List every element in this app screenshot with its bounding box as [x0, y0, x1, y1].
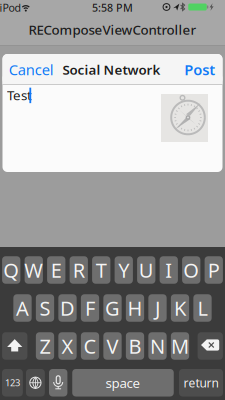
staticText: L: [197, 295, 207, 321]
staticText: O: [183, 257, 199, 283]
button[interactable]: Cancel: [9, 60, 54, 79]
button[interactable]: C: [81, 332, 99, 360]
staticText: K: [174, 295, 186, 321]
staticText: Z: [39, 333, 50, 359]
staticText: 123: [5, 377, 20, 389]
button[interactable]: Z: [36, 332, 54, 360]
staticText: Test: [7, 86, 32, 104]
staticText: REComposeViewController: [28, 21, 196, 38]
staticText: N: [150, 333, 165, 359]
staticText: F: [85, 295, 95, 321]
staticText: C: [83, 333, 96, 359]
button[interactable]: O: [182, 256, 200, 284]
button[interactable]: R: [70, 256, 88, 284]
staticText: Q: [3, 257, 19, 283]
button[interactable]: L: [193, 294, 212, 322]
staticText: P: [208, 257, 220, 283]
button[interactable]: B: [126, 332, 144, 360]
button[interactable]: Dictate: [49, 369, 67, 396]
staticText: Social Network: [62, 61, 160, 78]
staticText: B: [128, 333, 141, 359]
staticText: R: [73, 257, 85, 283]
button[interactable]: U: [137, 256, 155, 284]
staticText: Post: [184, 60, 215, 79]
staticText: J: [155, 295, 160, 321]
staticText: Y: [118, 257, 129, 283]
button[interactable]: P: [205, 256, 223, 284]
button[interactable]: Q: [2, 256, 20, 284]
staticText: I: [165, 257, 172, 283]
button[interactable]: 123: [2, 369, 23, 396]
staticText: A: [16, 295, 29, 321]
staticText: H: [127, 295, 142, 321]
button[interactable]: S: [36, 294, 54, 322]
button[interactable]: W: [25, 256, 43, 284]
staticText: X: [61, 333, 73, 359]
staticText: E: [51, 257, 62, 283]
button[interactable]: H: [126, 294, 144, 322]
button[interactable]: G: [103, 294, 122, 322]
button[interactable]: Post: [184, 60, 215, 79]
button[interactable]: Delete: [198, 332, 223, 360]
button[interactable]: Shift: [2, 332, 27, 360]
staticText: 5:58 PM: [92, 0, 133, 15]
button[interactable]: return: [179, 369, 223, 396]
button[interactable]: K: [171, 294, 189, 322]
staticText: T: [96, 257, 107, 283]
staticText: space: [105, 374, 140, 392]
staticText: iPod: [0, 0, 21, 15]
button[interactable]: M: [171, 332, 189, 360]
button[interactable]: A: [13, 294, 32, 322]
staticText: U: [139, 257, 154, 283]
staticText: W: [24, 257, 43, 283]
button[interactable]: V: [103, 332, 122, 360]
button[interactable]: J: [148, 294, 167, 322]
staticText: S: [39, 295, 50, 321]
staticText: G: [105, 295, 120, 321]
button[interactable]: T: [92, 256, 110, 284]
staticText: return: [183, 375, 218, 391]
staticText: Cancel: [9, 60, 54, 79]
staticText: V: [106, 333, 118, 359]
button[interactable]: N: [148, 332, 167, 360]
button[interactable]: space: [72, 369, 174, 396]
staticText: D: [60, 295, 75, 321]
button[interactable]: F: [81, 294, 99, 322]
button[interactable]: Next keyboard: [26, 369, 45, 396]
staticText: M: [171, 333, 189, 359]
button[interactable]: I: [160, 256, 178, 284]
button[interactable]: D: [58, 294, 77, 322]
button[interactable]: E: [47, 256, 65, 284]
button[interactable]: X: [58, 332, 77, 360]
button[interactable]: Y: [115, 256, 133, 284]
